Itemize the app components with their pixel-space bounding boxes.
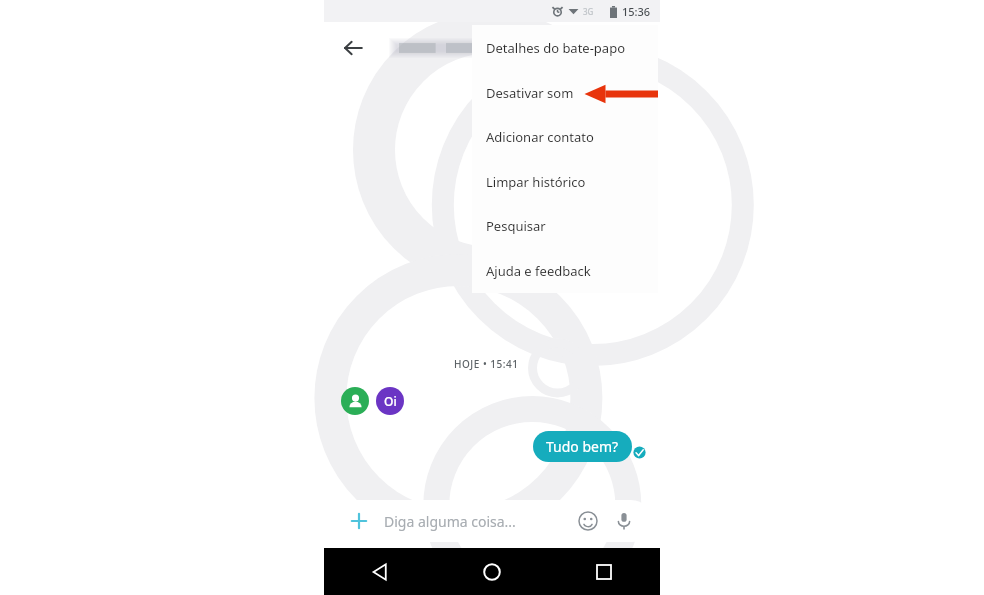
staticText: 15:36: [622, 4, 651, 19]
staticText: Desativar som: [486, 84, 574, 102]
button[interactable]: Adicionar contato: [472, 114, 658, 159]
button[interactable]: Home: [436, 548, 548, 595]
staticText: 3G: [583, 6, 594, 17]
staticText: Pesquisar: [486, 217, 546, 235]
button[interactable]: Detalhes do bate-papo: [472, 25, 658, 70]
button[interactable]: Pesquisar: [472, 203, 658, 248]
button[interactable]: Desativar som: [472, 70, 658, 115]
staticText: Oi: [384, 393, 397, 409]
staticText: Limpar histórico: [486, 173, 586, 191]
button[interactable]: Limpar histórico: [472, 159, 658, 204]
staticText: Adicionar contato: [486, 128, 594, 146]
button[interactable]: Recent apps: [548, 548, 660, 595]
staticText: Ajuda e feedback: [486, 262, 591, 280]
staticText: HOJE • 15:41: [454, 357, 519, 371]
button[interactable]: Ajuda e feedback: [472, 248, 658, 293]
button[interactable]: Tudo bem?: [533, 431, 632, 462]
button[interactable]: Back: [332, 27, 374, 69]
button[interactable]: Emoji: [575, 508, 601, 534]
button[interactable]: Voice message: [611, 508, 637, 534]
staticText: Tudo bem?: [546, 437, 619, 456]
button[interactable]: Back: [324, 548, 436, 595]
button[interactable]: Add attachment: [333, 500, 652, 542]
button[interactable]: Oi: [376, 387, 404, 415]
staticText: Diga alguma coisa...: [384, 512, 575, 531]
button[interactable]: Add attachment: [348, 510, 370, 532]
staticText: Detalhes do bate-papo: [486, 39, 626, 57]
